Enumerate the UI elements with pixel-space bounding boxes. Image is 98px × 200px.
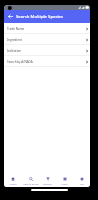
button[interactable]: Back bbox=[4, 10, 16, 23]
button[interactable]: Ingredient bbox=[4, 34, 90, 45]
button[interactable]: Trade Name bbox=[4, 23, 90, 34]
button[interactable]: Indication bbox=[4, 45, 90, 56]
button[interactable]: Fav bbox=[73, 175, 90, 187]
staticText: Home bbox=[9, 182, 17, 185]
staticText: Ingredient bbox=[7, 38, 22, 42]
staticText: Trade Name bbox=[7, 27, 25, 31]
staticText: More bbox=[61, 182, 68, 185]
button[interactable]: Browse bbox=[39, 175, 56, 187]
button[interactable]: More bbox=[56, 175, 73, 187]
staticText: Search drugs bbox=[23, 182, 39, 185]
staticText: Search by A/NADA bbox=[7, 60, 33, 64]
staticText: Indication bbox=[7, 49, 22, 53]
staticText: Search Multiple Species bbox=[16, 14, 64, 20]
button[interactable]: Search by A/NADA bbox=[4, 56, 90, 67]
button[interactable]: Home bbox=[4, 175, 22, 187]
button[interactable]: Search drugs bbox=[22, 175, 39, 187]
staticText: Fav bbox=[80, 182, 84, 185]
staticText: Browse bbox=[43, 182, 52, 185]
